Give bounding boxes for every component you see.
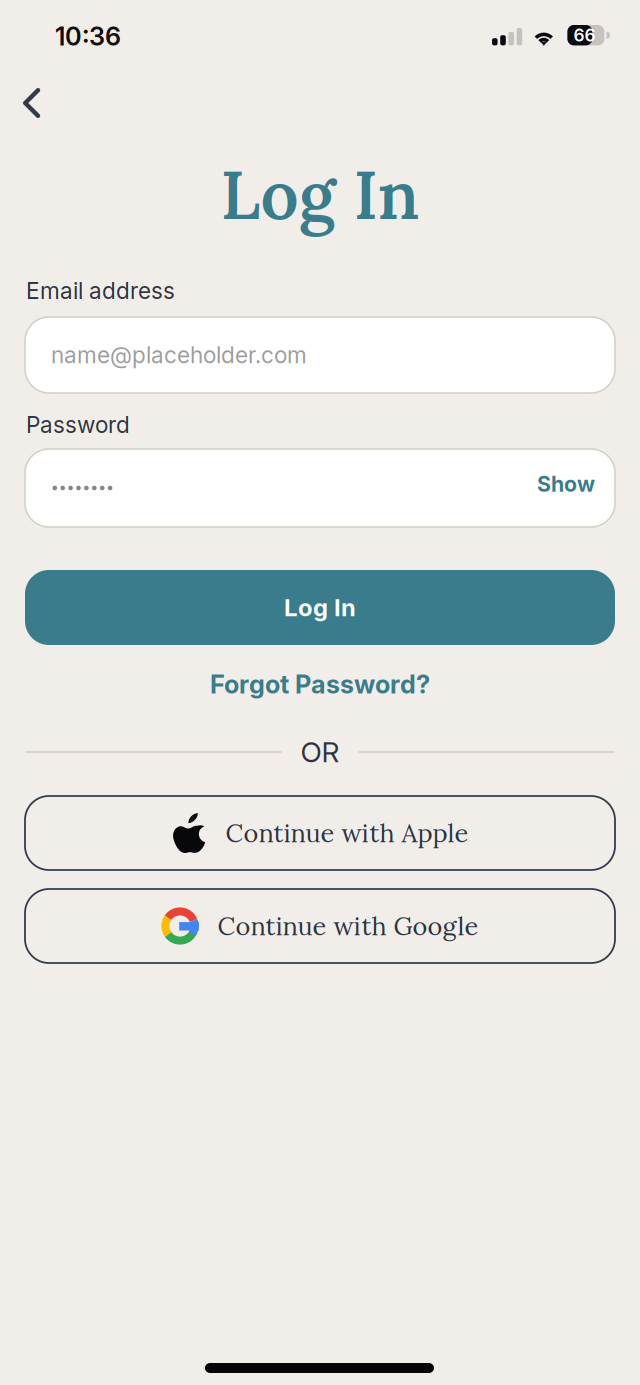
button[interactable]: Show [537,461,615,515]
button[interactable]: Forgot Password? [210,662,430,707]
staticText: Continue with Apple [225,817,468,849]
button[interactable]: Log In [25,570,615,645]
button[interactable]: Back [11,76,58,134]
button[interactable]: Continue with Apple [25,796,615,870]
staticText: Log In [220,152,419,237]
staticText: Forgot Password? [210,669,430,700]
staticText: Email address [26,277,175,304]
staticText: Password [26,411,130,438]
button[interactable]: Continue with Google [25,889,615,963]
staticText: OR [300,735,339,769]
staticText: Show [537,471,595,497]
staticText: 66 [573,25,595,46]
staticText: 10:36 [55,21,121,52]
staticText: name@placeholder.com [51,341,307,369]
staticText: Continue with Google [218,910,479,942]
staticText: Log In [284,593,356,622]
